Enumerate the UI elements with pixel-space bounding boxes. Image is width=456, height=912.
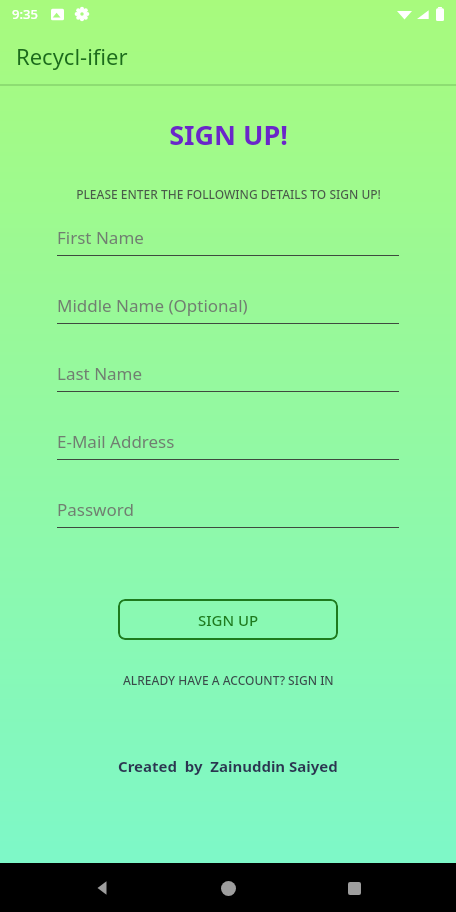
staticText: First Name [57, 226, 144, 249]
button[interactable]: Home [204, 864, 252, 912]
staticText: Password [57, 498, 134, 521]
staticText: SIGN UP [198, 610, 259, 630]
staticText: Middle Name (Optional) [57, 294, 248, 317]
staticText: SIGN UP! [169, 116, 288, 153]
button[interactable]: E-Mail Address [57, 430, 399, 498]
staticText: Created by Zainuddin Saiyed [118, 756, 338, 776]
button[interactable]: SIGN UP [118, 599, 338, 640]
button[interactable]: Password [57, 498, 399, 566]
staticText: Recycl-ifier [16, 41, 128, 71]
button[interactable]: ALREADY HAVE A ACCOUNT? SIGN IN [115, 666, 342, 694]
staticText: Last Name [57, 362, 143, 385]
staticText: 9:35 [12, 5, 38, 23]
button[interactable]: Recent apps [330, 864, 378, 912]
staticText: PLEASE ENTER THE FOLLOWING DETAILS TO SI… [76, 186, 381, 202]
button[interactable]: First Name [57, 226, 399, 294]
button[interactable]: Last Name [57, 362, 399, 430]
button[interactable]: Back [78, 864, 126, 912]
staticText: ALREADY HAVE A ACCOUNT? SIGN IN [123, 672, 334, 688]
button[interactable]: Middle Name (Optional) [57, 294, 399, 362]
staticText: E-Mail Address [57, 430, 175, 453]
